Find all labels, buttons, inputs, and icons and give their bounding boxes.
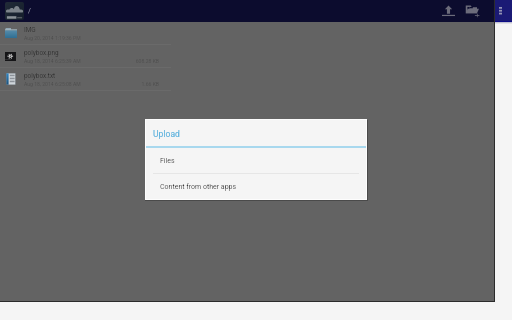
- staticText: Content from other apps: [160, 183, 237, 191]
- button[interactable]: polybox.png: [0, 45, 171, 67]
- staticText: Aug 18, 2014 6:25:08 AM: [24, 81, 81, 87]
- staticText: Files: [160, 157, 175, 165]
- staticText: 1.66 KB: [141, 81, 159, 87]
- staticText: Aug 20, 2014 1:19:36 PM: [24, 35, 81, 41]
- staticText: Aug 18, 2014 6:25:39 AM: [24, 58, 81, 64]
- button[interactable]: Files: [146, 148, 366, 173]
- staticText: /: [28, 7, 31, 15]
- button[interactable]: IMG: [0, 22, 171, 44]
- button[interactable]: More options: [495, 0, 512, 21]
- staticText: 608.28 KB: [135, 58, 159, 64]
- staticText: IMG: [24, 26, 36, 34]
- button[interactable]: New folder: [460, 0, 484, 22]
- button[interactable]: Content from other apps: [146, 174, 366, 199]
- button[interactable]: polybox.txt: [0, 68, 171, 90]
- staticText: polybox.png: [24, 49, 59, 57]
- button[interactable]: Upload: [436, 0, 460, 22]
- staticText: polybox.txt: [24, 72, 56, 80]
- staticText: Upload: [153, 129, 180, 139]
